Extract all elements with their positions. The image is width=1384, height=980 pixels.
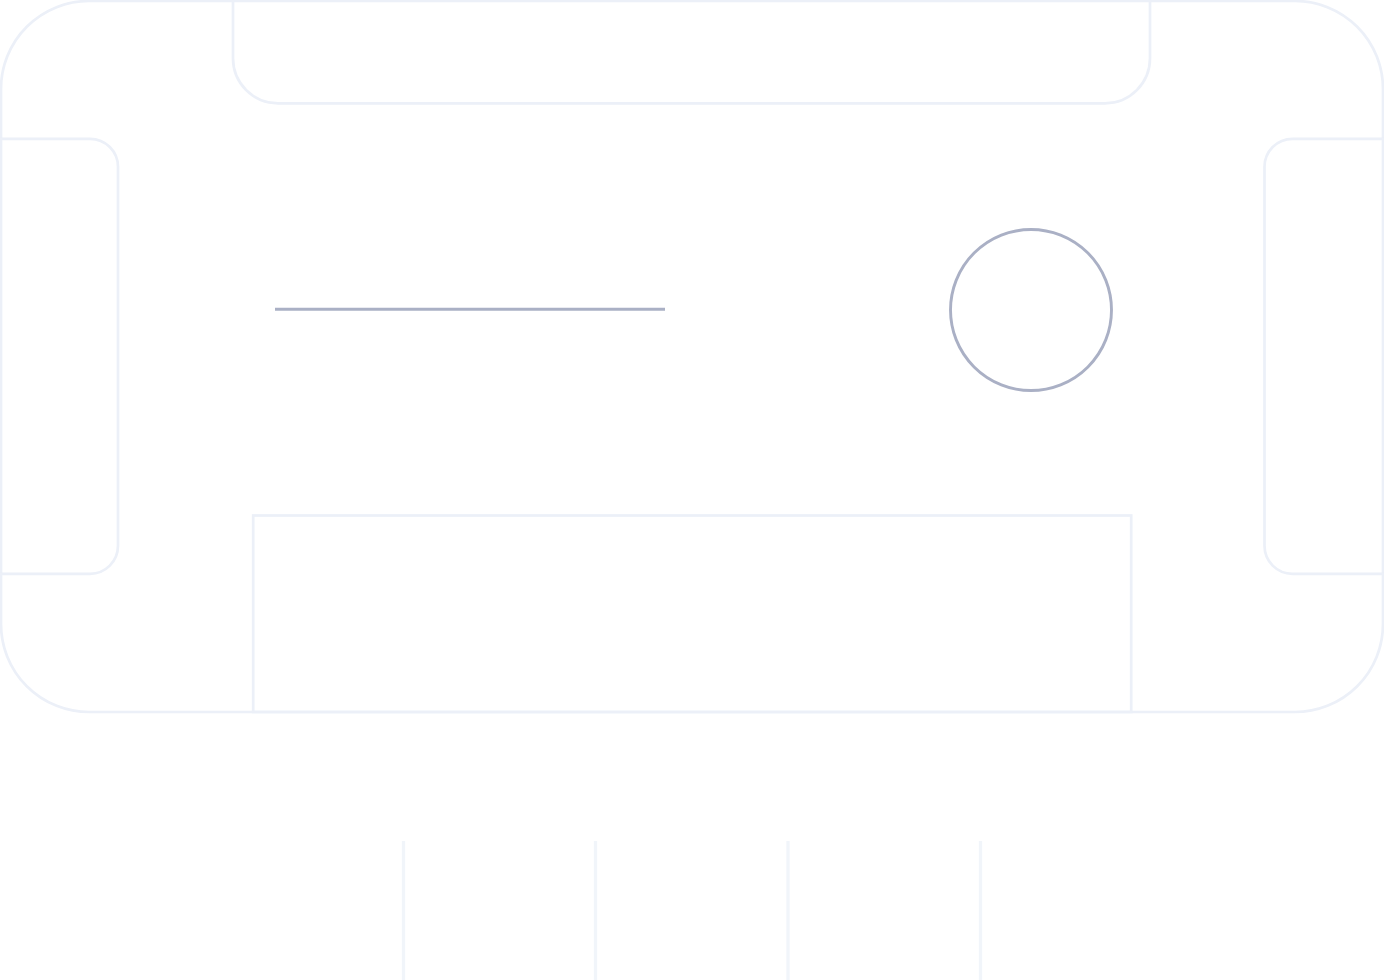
- button[interactable]: Add: [950, 229, 1112, 391]
- button[interactable]: Side panel: [1264, 139, 1384, 574]
- button[interactable]: Top app bar: [233, 0, 1150, 103]
- button[interactable]: Navigation rail: [0, 139, 118, 574]
- button[interactable]: Headline: [275, 278, 665, 340]
